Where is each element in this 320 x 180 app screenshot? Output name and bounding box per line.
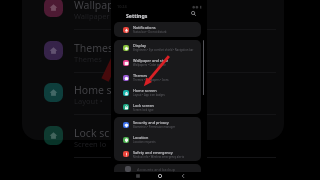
- staticText: Themes: [74, 54, 102, 64]
- staticText: Home s: [74, 83, 112, 97]
- staticText: Home screen: [133, 88, 157, 93]
- staticText: Themes • Wallpapers • Icons: [133, 78, 169, 82]
- button[interactable]: Themes: [114, 70, 201, 85]
- staticText: Biometrics • Permission manager: [133, 125, 176, 129]
- staticText: Notifications: [133, 25, 156, 30]
- staticText: Themes: [74, 41, 114, 55]
- button[interactable]: Wallpaper and style: [114, 55, 201, 70]
- button[interactable]: Back: [177, 170, 188, 180]
- staticText: Lock screen: [133, 103, 154, 108]
- staticText: Screen lo: [74, 139, 107, 149]
- button[interactable]: Search: [189, 9, 198, 18]
- staticText: Settings: [126, 12, 148, 19]
- button[interactable]: Security and privacy: [114, 117, 201, 132]
- staticText: Status bar • Do not disturb: [133, 30, 167, 34]
- staticText: Wallpape: [74, 0, 120, 12]
- staticText: Accounts and backup: [137, 167, 176, 172]
- staticText: Brightness • Eye comfort shield • Naviga…: [133, 48, 194, 52]
- staticText: 10:24: [117, 4, 127, 9]
- button[interactable]: Lock screen: [114, 100, 201, 114]
- staticText: Display: [133, 43, 146, 48]
- staticText: Layout • App icon badges: [133, 93, 165, 97]
- staticText: Lock sc: [74, 126, 110, 140]
- staticText: Screen lock type: [133, 108, 154, 112]
- staticText: Location: [133, 135, 149, 140]
- button[interactable]: Recent apps: [132, 170, 143, 180]
- staticText: Wallpaper and style: [133, 58, 169, 63]
- staticText: ●● ▮: [192, 4, 202, 9]
- staticText: Medical info • Wireless emergency alerts: [133, 155, 184, 159]
- staticText: Themes: [133, 73, 148, 78]
- button[interactable]: Home: [154, 170, 165, 180]
- button[interactable]: Notifications: [114, 22, 201, 37]
- staticText: Location requests: [133, 140, 156, 144]
- button[interactable]: Display: [114, 40, 201, 55]
- button[interactable]: Safety and emergency: [114, 147, 201, 161]
- button[interactable]: Location: [114, 132, 201, 147]
- staticText: Wallpaper: [74, 11, 110, 21]
- button[interactable]: Accounts and backup: [114, 164, 201, 172]
- staticText: Layout •: [74, 96, 103, 106]
- staticText: Security and privacy: [133, 120, 169, 125]
- staticText: Wallpapers • Color palette: [133, 63, 166, 67]
- button[interactable]: Home screen: [114, 85, 201, 100]
- staticText: Safety and emergency: [133, 150, 173, 155]
